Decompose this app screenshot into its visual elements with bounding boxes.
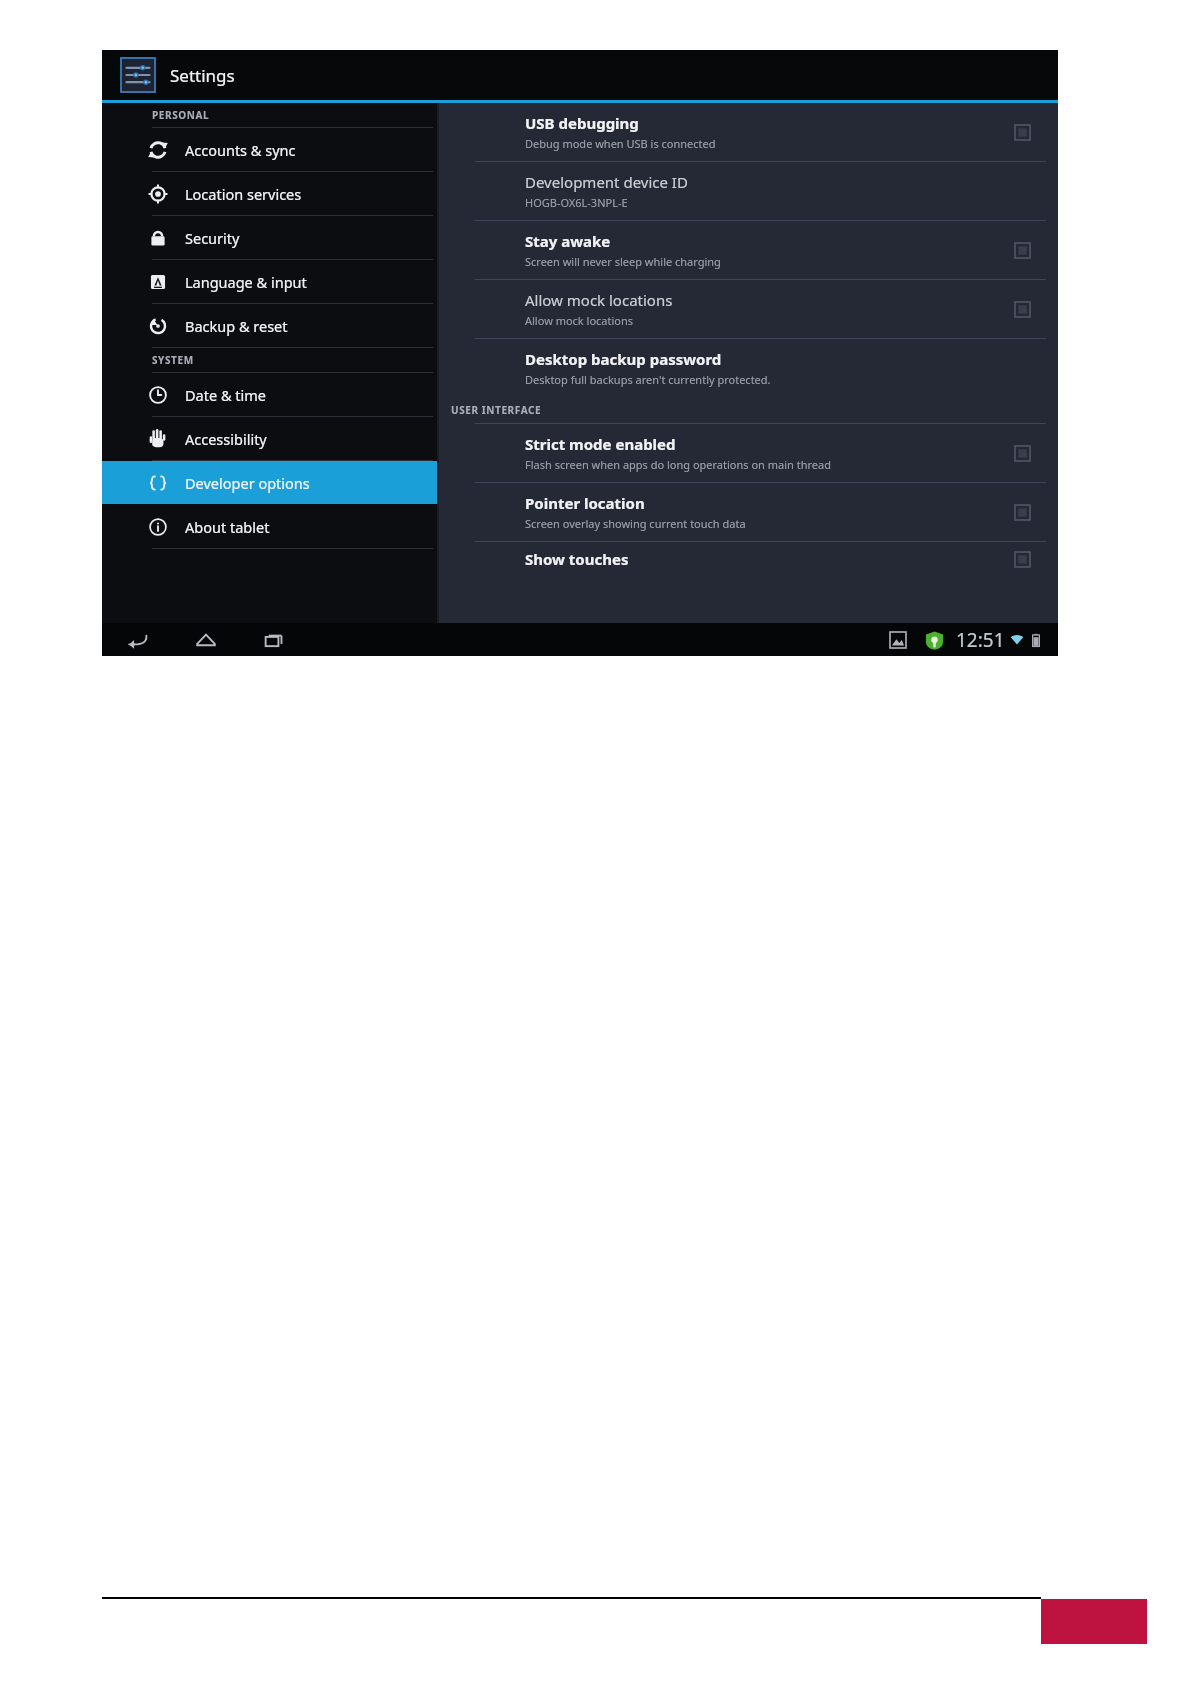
button[interactable]: Developer options (102, 461, 437, 504)
button[interactable]: USB debugging (439, 103, 1058, 161)
staticText: PERSONAL (152, 108, 210, 122)
button[interactable]: About tablet (102, 505, 437, 548)
staticText: Desktop backup password (525, 349, 722, 369)
staticText: Accessibility (185, 429, 267, 449)
staticText: USB debugging (525, 113, 639, 133)
button[interactable]: Accessibility (102, 417, 437, 460)
staticText: SYSTEM (152, 353, 194, 367)
staticText: Show touches (525, 549, 629, 569)
other: Screenshot (886, 628, 910, 652)
button[interactable]: Backup & reset (102, 304, 437, 347)
button[interactable]: Strict mode enabled checkbox (1012, 443, 1032, 463)
other: Battery (1028, 632, 1044, 648)
other: Settings app icon (120, 57, 156, 93)
staticText: Screen will never sleep while charging (525, 254, 721, 269)
other: Wi-Fi (1009, 632, 1025, 648)
staticText: Language & input (185, 272, 307, 292)
button[interactable]: Show touches (439, 542, 1058, 576)
staticText: Settings (170, 64, 235, 87)
staticText: Screen overlay showing current touch dat… (525, 516, 746, 531)
button[interactable]: Allow mock locations (439, 280, 1058, 338)
button[interactable]: Language & input (102, 260, 437, 303)
staticText: Security (185, 228, 240, 248)
staticText: Development device ID (525, 172, 688, 192)
button[interactable]: Accounts & sync (102, 128, 437, 171)
staticText: Allow mock locations (525, 290, 673, 310)
button[interactable]: Recent apps (252, 625, 296, 655)
button[interactable]: USB debugging checkbox (1012, 122, 1032, 142)
button[interactable]: Pointer location checkbox (1012, 502, 1032, 522)
staticText: About tablet (185, 517, 270, 537)
button[interactable]: Desktop backup password (439, 339, 1058, 397)
button[interactable]: Date & time (102, 373, 437, 416)
staticText: Location services (185, 184, 302, 204)
button[interactable]: Home (184, 625, 228, 655)
staticText: Backup & reset (185, 316, 288, 336)
staticText: Flash screen when apps do long operation… (525, 457, 831, 472)
button[interactable]: Strict mode enabled (439, 424, 1058, 482)
button[interactable]: Development device ID (439, 162, 1058, 220)
staticText: Strict mode enabled (525, 434, 676, 454)
button[interactable]: Pointer location (439, 483, 1058, 541)
staticText: Date & time (185, 385, 266, 405)
other: Security app (922, 628, 946, 652)
button[interactable]: Security (102, 216, 437, 259)
button[interactable]: Stay awake checkbox (1012, 240, 1032, 260)
staticText: USER INTERFACE (451, 403, 542, 417)
staticText: Developer options (185, 473, 310, 493)
button[interactable]: Allow mock locations checkbox (1012, 299, 1032, 319)
staticText: HOGB-OX6L-3NPL-E (525, 195, 628, 210)
staticText: Allow mock locations (525, 313, 634, 328)
button[interactable]: Show touches checkbox (1012, 549, 1032, 569)
button[interactable]: Back (116, 625, 160, 655)
staticText: Pointer location (525, 493, 645, 513)
button[interactable]: Location services (102, 172, 437, 215)
staticText: Desktop full backups aren't currently pr… (525, 372, 771, 387)
staticText: Stay awake (525, 231, 611, 251)
staticText: 12:51 (956, 627, 1005, 653)
staticText: Debug mode when USB is connected (525, 136, 716, 151)
button[interactable]: Stay awake (439, 221, 1058, 279)
staticText: Accounts & sync (185, 140, 296, 160)
